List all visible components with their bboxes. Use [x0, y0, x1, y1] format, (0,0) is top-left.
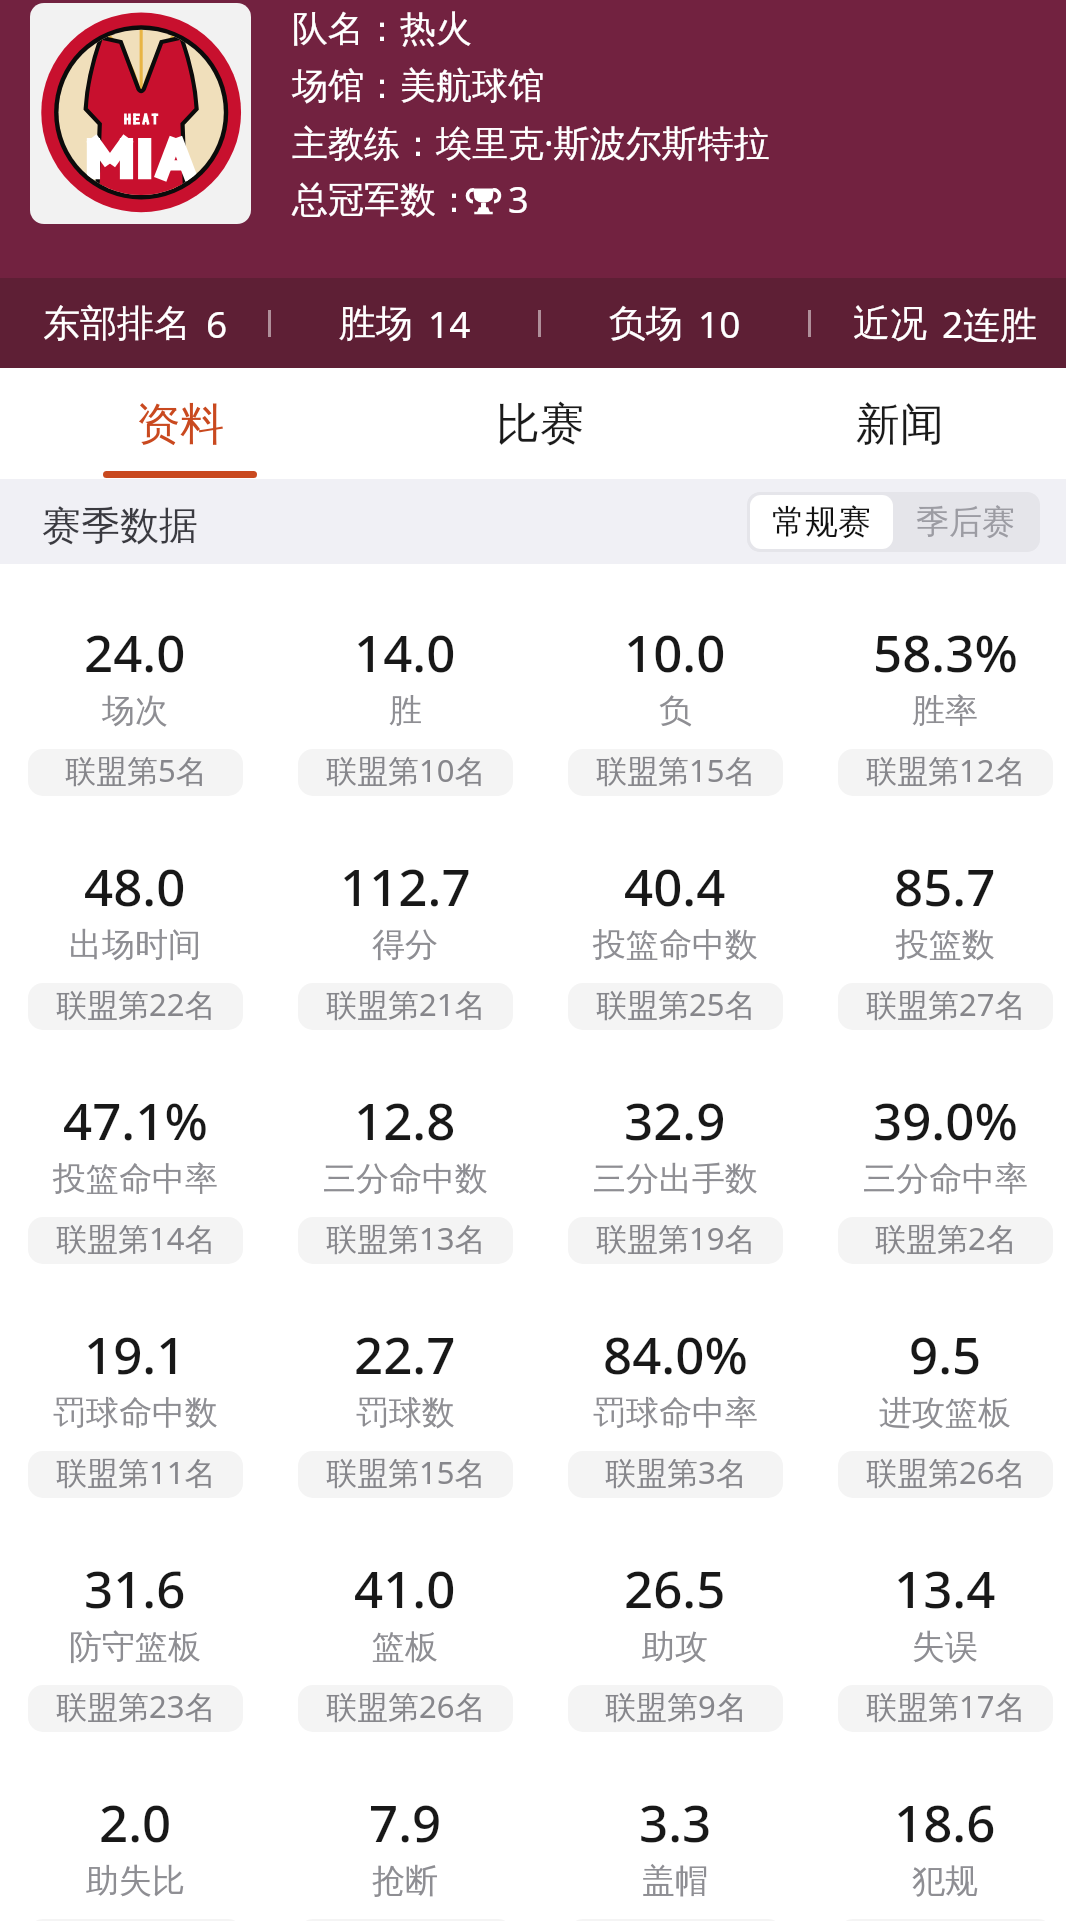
staticText: 41.0 — [354, 1553, 456, 1622]
staticText: 投篮数 — [896, 924, 995, 966]
staticText: 三分命中数 — [323, 1158, 488, 1200]
button[interactable]: 2.0 — [0, 1734, 270, 1921]
button[interactable]: 31.6 — [0, 1500, 270, 1734]
staticText: 联盟第26名 — [866, 1451, 1026, 1493]
button[interactable]: 58.3% — [810, 564, 1066, 798]
staticText: 罚球数 — [356, 1392, 455, 1434]
button[interactable]: 胜场 — [270, 278, 540, 368]
staticText: 联盟第17名 — [866, 1685, 1026, 1727]
staticText: 负场 — [609, 300, 683, 347]
button[interactable]: 10.0 — [540, 564, 810, 798]
button[interactable]: 85.7 — [810, 798, 1066, 1032]
button[interactable]: 47.1% — [0, 1032, 270, 1266]
staticText: 失误 — [912, 1626, 978, 1668]
button[interactable]: 32.9 — [540, 1032, 810, 1266]
button[interactable]: 12.8 — [270, 1032, 540, 1266]
staticText: 东部排名 — [43, 300, 191, 347]
staticText: 22.7 — [354, 1319, 456, 1388]
button[interactable]: 39.0% — [810, 1032, 1066, 1266]
button[interactable]: 负场 — [540, 278, 810, 368]
staticText: 3 — [508, 175, 529, 224]
staticText: 12.8 — [354, 1085, 456, 1154]
staticText: 总冠军数： — [292, 177, 472, 222]
staticText: 三分出手数 — [593, 1158, 758, 1200]
staticText: 40.4 — [624, 851, 726, 920]
staticText: 联盟第15名 — [596, 749, 756, 791]
button[interactable]: 41.0 — [270, 1500, 540, 1734]
button[interactable]: 常规赛 — [750, 495, 893, 549]
staticText: 10 — [698, 298, 741, 348]
staticText: 85.7 — [894, 851, 996, 920]
button[interactable]: 资料 — [0, 368, 360, 479]
staticText: 26.5 — [624, 1553, 726, 1622]
staticText: 出场时间 — [69, 924, 201, 966]
button[interactable]: 19.1 — [0, 1266, 270, 1500]
staticText: 联盟第13名 — [326, 1217, 486, 1259]
staticText: 联盟第27名 — [866, 983, 1026, 1025]
button[interactable]: 24.0 — [0, 564, 270, 798]
staticText: 18.6 — [894, 1787, 996, 1856]
staticText: 联盟第22名 — [56, 983, 216, 1025]
staticText: 联盟第11名 — [56, 1451, 216, 1493]
staticText: 抢断 — [372, 1860, 438, 1902]
staticText: 场次 — [102, 690, 168, 732]
staticText: 联盟第25名 — [596, 983, 756, 1025]
staticText: 新闻 — [856, 397, 944, 452]
button[interactable]: 48.0 — [0, 798, 270, 1032]
button[interactable]: 26.5 — [540, 1500, 810, 1734]
staticText: 2连胜 — [942, 298, 1038, 349]
staticText: 联盟第15名 — [326, 1451, 486, 1493]
staticText: 季后赛 — [916, 501, 1015, 543]
staticText: 进攻篮板 — [879, 1392, 1011, 1434]
button[interactable]: 球队队徽 — [30, 3, 251, 224]
staticText: 联盟第3名 — [605, 1451, 747, 1493]
staticText: 48.0 — [84, 851, 186, 920]
button[interactable]: 112.7 — [270, 798, 540, 1032]
staticText: 近况 — [853, 300, 927, 347]
button[interactable]: 季后赛 — [893, 495, 1037, 549]
staticText: 19.1 — [84, 1319, 186, 1388]
staticText: 32.9 — [624, 1085, 726, 1154]
staticText: 84.0% — [603, 1319, 748, 1388]
button[interactable]: 13.4 — [810, 1500, 1066, 1734]
staticText: 112.7 — [340, 851, 471, 920]
staticText: 助攻 — [642, 1626, 708, 1668]
staticText: 队名：热火 — [292, 6, 472, 51]
button[interactable]: 新闻 — [720, 368, 1066, 479]
staticText: 投篮命中率 — [53, 1158, 218, 1200]
button[interactable]: 84.0% — [540, 1266, 810, 1500]
staticText: 联盟第10名 — [326, 749, 486, 791]
staticText: 负 — [659, 690, 692, 732]
button[interactable]: 18.6 — [810, 1734, 1066, 1921]
staticText: 联盟第23名 — [56, 1685, 216, 1727]
button[interactable]: 东部排名 — [0, 278, 270, 368]
button[interactable]: 3.3 — [540, 1734, 810, 1921]
button[interactable]: 7.9 — [270, 1734, 540, 1921]
staticText: 58.3% — [873, 617, 1018, 686]
staticText: 赛季数据 — [42, 501, 198, 550]
staticText: 31.6 — [84, 1553, 186, 1622]
staticText: 篮板 — [372, 1626, 438, 1668]
staticText: 3.3 — [639, 1787, 712, 1856]
staticText: 联盟第9名 — [605, 1685, 747, 1727]
staticText: 13.4 — [894, 1553, 996, 1622]
staticText: 联盟第5名 — [65, 749, 207, 791]
button[interactable]: 14.0 — [270, 564, 540, 798]
staticText: 罚球命中率 — [593, 1392, 758, 1434]
staticText: 防守篮板 — [69, 1626, 201, 1668]
staticText: 三分命中率 — [863, 1158, 1028, 1200]
button[interactable]: 40.4 — [540, 798, 810, 1032]
staticText: 场馆：美航球馆 — [292, 63, 544, 108]
button[interactable]: 9.5 — [810, 1266, 1066, 1500]
staticText: 常规赛 — [772, 501, 871, 543]
staticText: 47.1% — [63, 1085, 208, 1154]
button[interactable]: 比赛 — [360, 368, 720, 479]
staticText: 联盟第12名 — [866, 749, 1026, 791]
button[interactable]: 22.7 — [270, 1266, 540, 1500]
staticText: 39.0% — [873, 1085, 1018, 1154]
button[interactable]: 近况 — [810, 278, 1066, 368]
staticText: 2.0 — [99, 1787, 172, 1856]
